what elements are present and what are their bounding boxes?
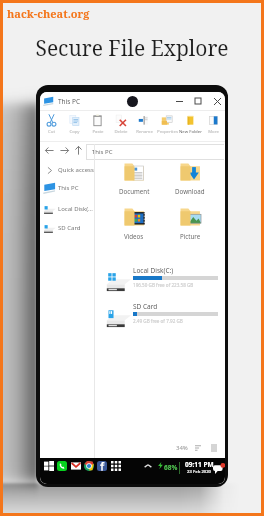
staticText: More bbox=[208, 128, 219, 134]
button[interactable]: Phone bbox=[55, 459, 68, 472]
button[interactable]: Copy bbox=[63, 114, 86, 134]
staticText: Document bbox=[119, 187, 150, 195]
button[interactable]: Download bbox=[169, 159, 211, 199]
button[interactable]: Start bbox=[42, 459, 55, 472]
staticText: Local Disk(... bbox=[58, 205, 93, 213]
staticText: 196.50 GB free of 223.58 GB bbox=[133, 282, 194, 288]
staticText: SD Card bbox=[133, 302, 158, 311]
staticText: Paste bbox=[92, 128, 104, 134]
button[interactable]: Quick access bbox=[41, 161, 94, 179]
staticText: Properties bbox=[157, 128, 178, 134]
staticText: Copy bbox=[69, 128, 80, 134]
staticText: Cut bbox=[48, 128, 55, 134]
button[interactable]: Apps bbox=[109, 459, 122, 472]
button[interactable]: Local Disk(... bbox=[41, 200, 94, 218]
button[interactable]: Chrome bbox=[82, 459, 95, 472]
button[interactable]: Document bbox=[113, 159, 155, 199]
button[interactable]: Gmail bbox=[69, 459, 82, 472]
button[interactable]: Videos bbox=[113, 204, 155, 244]
staticText: This PC bbox=[58, 97, 81, 106]
button[interactable]: Properties bbox=[156, 114, 179, 134]
button[interactable]: Local Disk(C:) bbox=[98, 263, 224, 293]
staticText: Quick access bbox=[58, 166, 94, 174]
button[interactable]: Delete bbox=[109, 114, 132, 134]
button[interactable]: Paste bbox=[86, 114, 109, 134]
button[interactable]: More bbox=[202, 114, 225, 134]
button[interactable]: New Folder bbox=[179, 114, 202, 134]
staticText: This PC bbox=[92, 148, 113, 156]
staticText: Secure File Explore bbox=[0, 34, 264, 63]
button[interactable]: Close bbox=[209, 93, 225, 109]
button[interactable]: List view bbox=[192, 442, 203, 453]
staticText: New Folder bbox=[179, 128, 202, 134]
button[interactable]: This PC bbox=[86, 144, 224, 160]
button[interactable]: Up bbox=[72, 144, 85, 157]
button[interactable]: Picture bbox=[169, 204, 211, 244]
staticText: Videos bbox=[124, 232, 144, 240]
button[interactable]: This PC bbox=[41, 179, 94, 197]
button[interactable]: Cut bbox=[40, 114, 63, 134]
button[interactable]: Notifications bbox=[212, 462, 225, 475]
button[interactable]: SD Card bbox=[98, 299, 224, 329]
staticText: This PC bbox=[58, 184, 79, 192]
staticText: 2.49 GB free of 7.92 GB bbox=[133, 318, 183, 324]
button[interactable]: Facebook bbox=[95, 459, 108, 472]
button[interactable]: Back bbox=[43, 144, 56, 157]
staticText: Local Disk(C:) bbox=[133, 266, 174, 275]
staticText: Rename bbox=[136, 128, 153, 134]
button[interactable]: Minimize bbox=[171, 93, 187, 109]
staticText: 34% bbox=[176, 444, 188, 452]
staticText: hack-cheat.org bbox=[7, 6, 90, 21]
button[interactable]: Forward bbox=[58, 144, 71, 157]
button[interactable]: Show hidden icons bbox=[143, 461, 153, 471]
staticText: 09:11 PM bbox=[185, 460, 214, 469]
button[interactable]: Details view bbox=[208, 442, 219, 453]
staticText: Picture bbox=[180, 232, 201, 240]
staticText: Delete bbox=[114, 128, 128, 134]
button[interactable]: SD Card bbox=[41, 219, 94, 237]
button[interactable]: Rename bbox=[133, 114, 156, 134]
staticText: Download bbox=[175, 187, 205, 195]
staticText: 68% bbox=[164, 463, 178, 472]
staticText: 23 Feb 2020 bbox=[187, 469, 211, 475]
staticText: SD Card bbox=[58, 224, 81, 232]
button[interactable]: Maximize bbox=[190, 93, 206, 109]
